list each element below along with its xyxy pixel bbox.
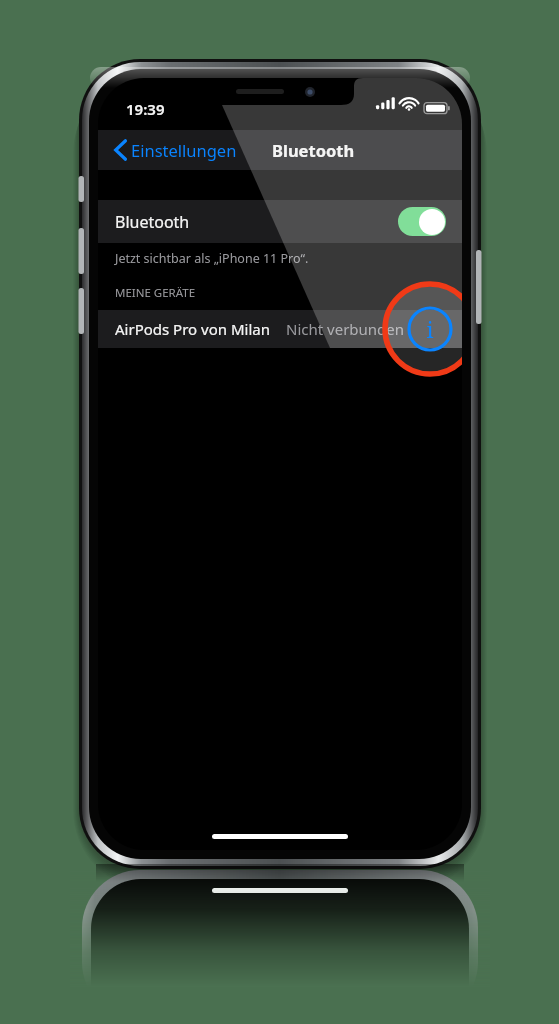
staticText: MEINE GERÄTE — [115, 285, 196, 301]
button[interactable]: AirPods Pro von Milan — [98, 310, 462, 348]
staticText: Bluetooth — [272, 139, 355, 161]
button[interactable]: Bluetooth ein — [398, 207, 446, 236]
staticText: Nicht verbunden — [286, 319, 405, 339]
staticText: Einstellungen — [131, 139, 237, 161]
staticText: Jetzt sichtbar als „iPhone 11 Pro“. — [115, 250, 309, 267]
button[interactable]: Bluetooth — [98, 200, 462, 243]
button[interactable]: Einstellungen — [106, 130, 256, 170]
staticText: Bluetooth — [115, 211, 190, 233]
staticText: i — [426, 314, 434, 344]
button[interactable]: Geräteinformationen — [382, 281, 462, 377]
staticText: AirPods Pro von Milan — [115, 319, 270, 339]
staticText: 19:39 — [126, 99, 165, 119]
